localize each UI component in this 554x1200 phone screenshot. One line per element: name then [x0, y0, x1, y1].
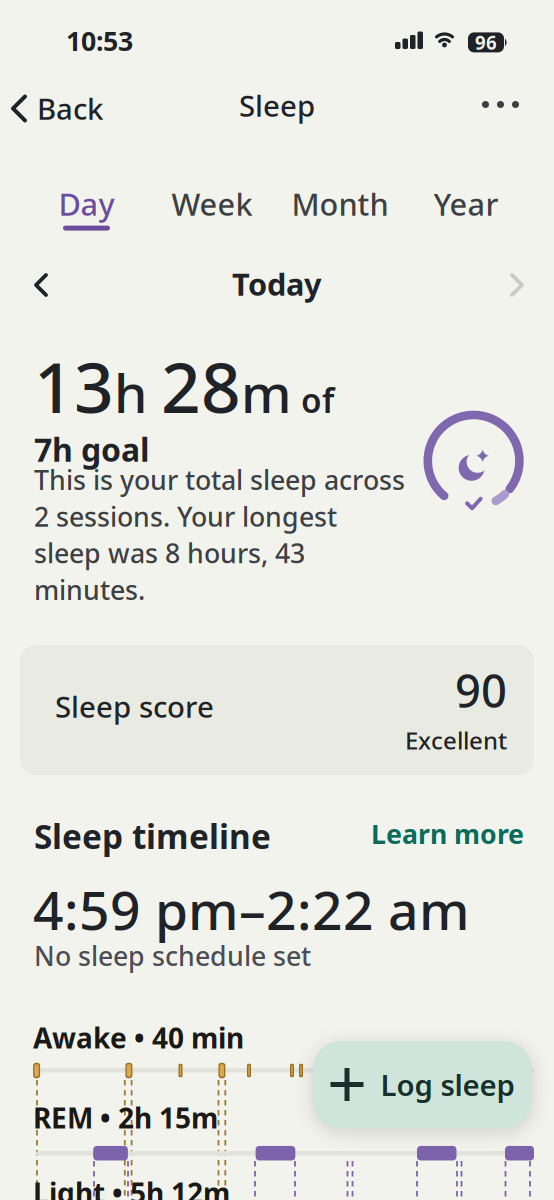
staticText: Sleep: [239, 86, 315, 125]
staticText: 13: [34, 340, 114, 432]
button[interactable]: Month: [291, 183, 388, 231]
staticText: Sleep score: [55, 687, 214, 726]
staticText: REM • 2h 15m: [33, 1099, 218, 1136]
staticText: Month: [291, 183, 388, 224]
staticText: m: [241, 357, 292, 428]
staticText: This is your total sleep across: [34, 462, 405, 497]
button[interactable]: Next day: [503, 266, 531, 304]
staticText: 4:59 pm–2:22 am: [33, 874, 470, 945]
staticText: No sleep schedule set: [34, 938, 311, 973]
button[interactable]: More options: [478, 91, 523, 118]
staticText: Log sleep: [380, 1065, 514, 1104]
staticText: Week: [171, 183, 252, 224]
button[interactable]: Sleep score: [20, 645, 534, 775]
staticText: 90: [455, 660, 507, 720]
staticText: Year: [433, 183, 498, 224]
button[interactable]: Day: [58, 183, 114, 231]
button[interactable]: Back: [10, 85, 103, 132]
staticText: Excellent: [405, 724, 507, 756]
button[interactable]: Log sleep: [313, 1041, 532, 1128]
staticText: Back: [37, 89, 103, 128]
staticText: of: [292, 378, 334, 422]
staticText: 96: [475, 30, 497, 55]
staticText: Awake • 40 min: [33, 1019, 244, 1056]
staticText: Light • 5h 12m: [33, 1174, 230, 1200]
staticText: sleep was 8 hours, 43: [34, 535, 305, 571]
staticText: minutes.: [34, 572, 145, 607]
button[interactable]: Previous day: [27, 266, 55, 304]
staticText: Learn more: [371, 816, 524, 851]
button[interactable]: Week: [171, 183, 252, 231]
button[interactable]: Year: [433, 183, 498, 231]
staticText: h: [114, 357, 161, 428]
staticText: Sleep timeline: [34, 814, 271, 858]
button[interactable]: Learn more: [367, 812, 528, 855]
staticText: 7h goal: [34, 428, 150, 470]
staticText: 28: [161, 340, 241, 432]
staticText: Today: [232, 263, 322, 304]
staticText: 2 sessions. Your longest: [34, 499, 337, 534]
staticText: Day: [58, 183, 114, 224]
staticText: 10:53: [66, 23, 133, 58]
